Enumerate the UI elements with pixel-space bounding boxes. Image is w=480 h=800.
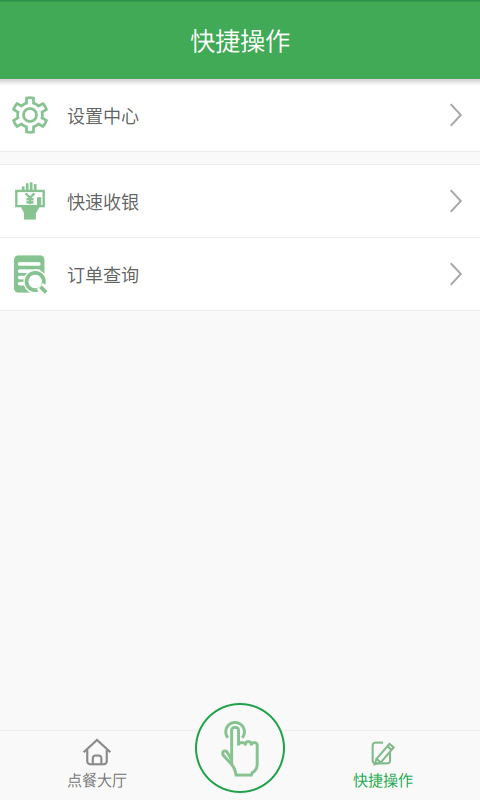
button[interactable]: 快捷操作 bbox=[286, 730, 480, 800]
button[interactable]: 点餐大厅 bbox=[0, 730, 194, 800]
staticText: 快速收银 bbox=[67, 188, 139, 214]
button[interactable]: 订单查询 bbox=[0, 238, 480, 310]
staticText: 点餐大厅 bbox=[67, 768, 127, 790]
staticText: 设置中心 bbox=[67, 102, 139, 128]
button[interactable]: 快速收银 bbox=[0, 165, 480, 237]
staticText: 订单查询 bbox=[67, 261, 139, 287]
button[interactable]: 设置中心 bbox=[0, 79, 480, 151]
staticText: 快捷操作 bbox=[353, 768, 413, 790]
staticText: 快捷操作 bbox=[190, 21, 290, 58]
button[interactable]: 快捷下单 bbox=[194, 702, 286, 794]
